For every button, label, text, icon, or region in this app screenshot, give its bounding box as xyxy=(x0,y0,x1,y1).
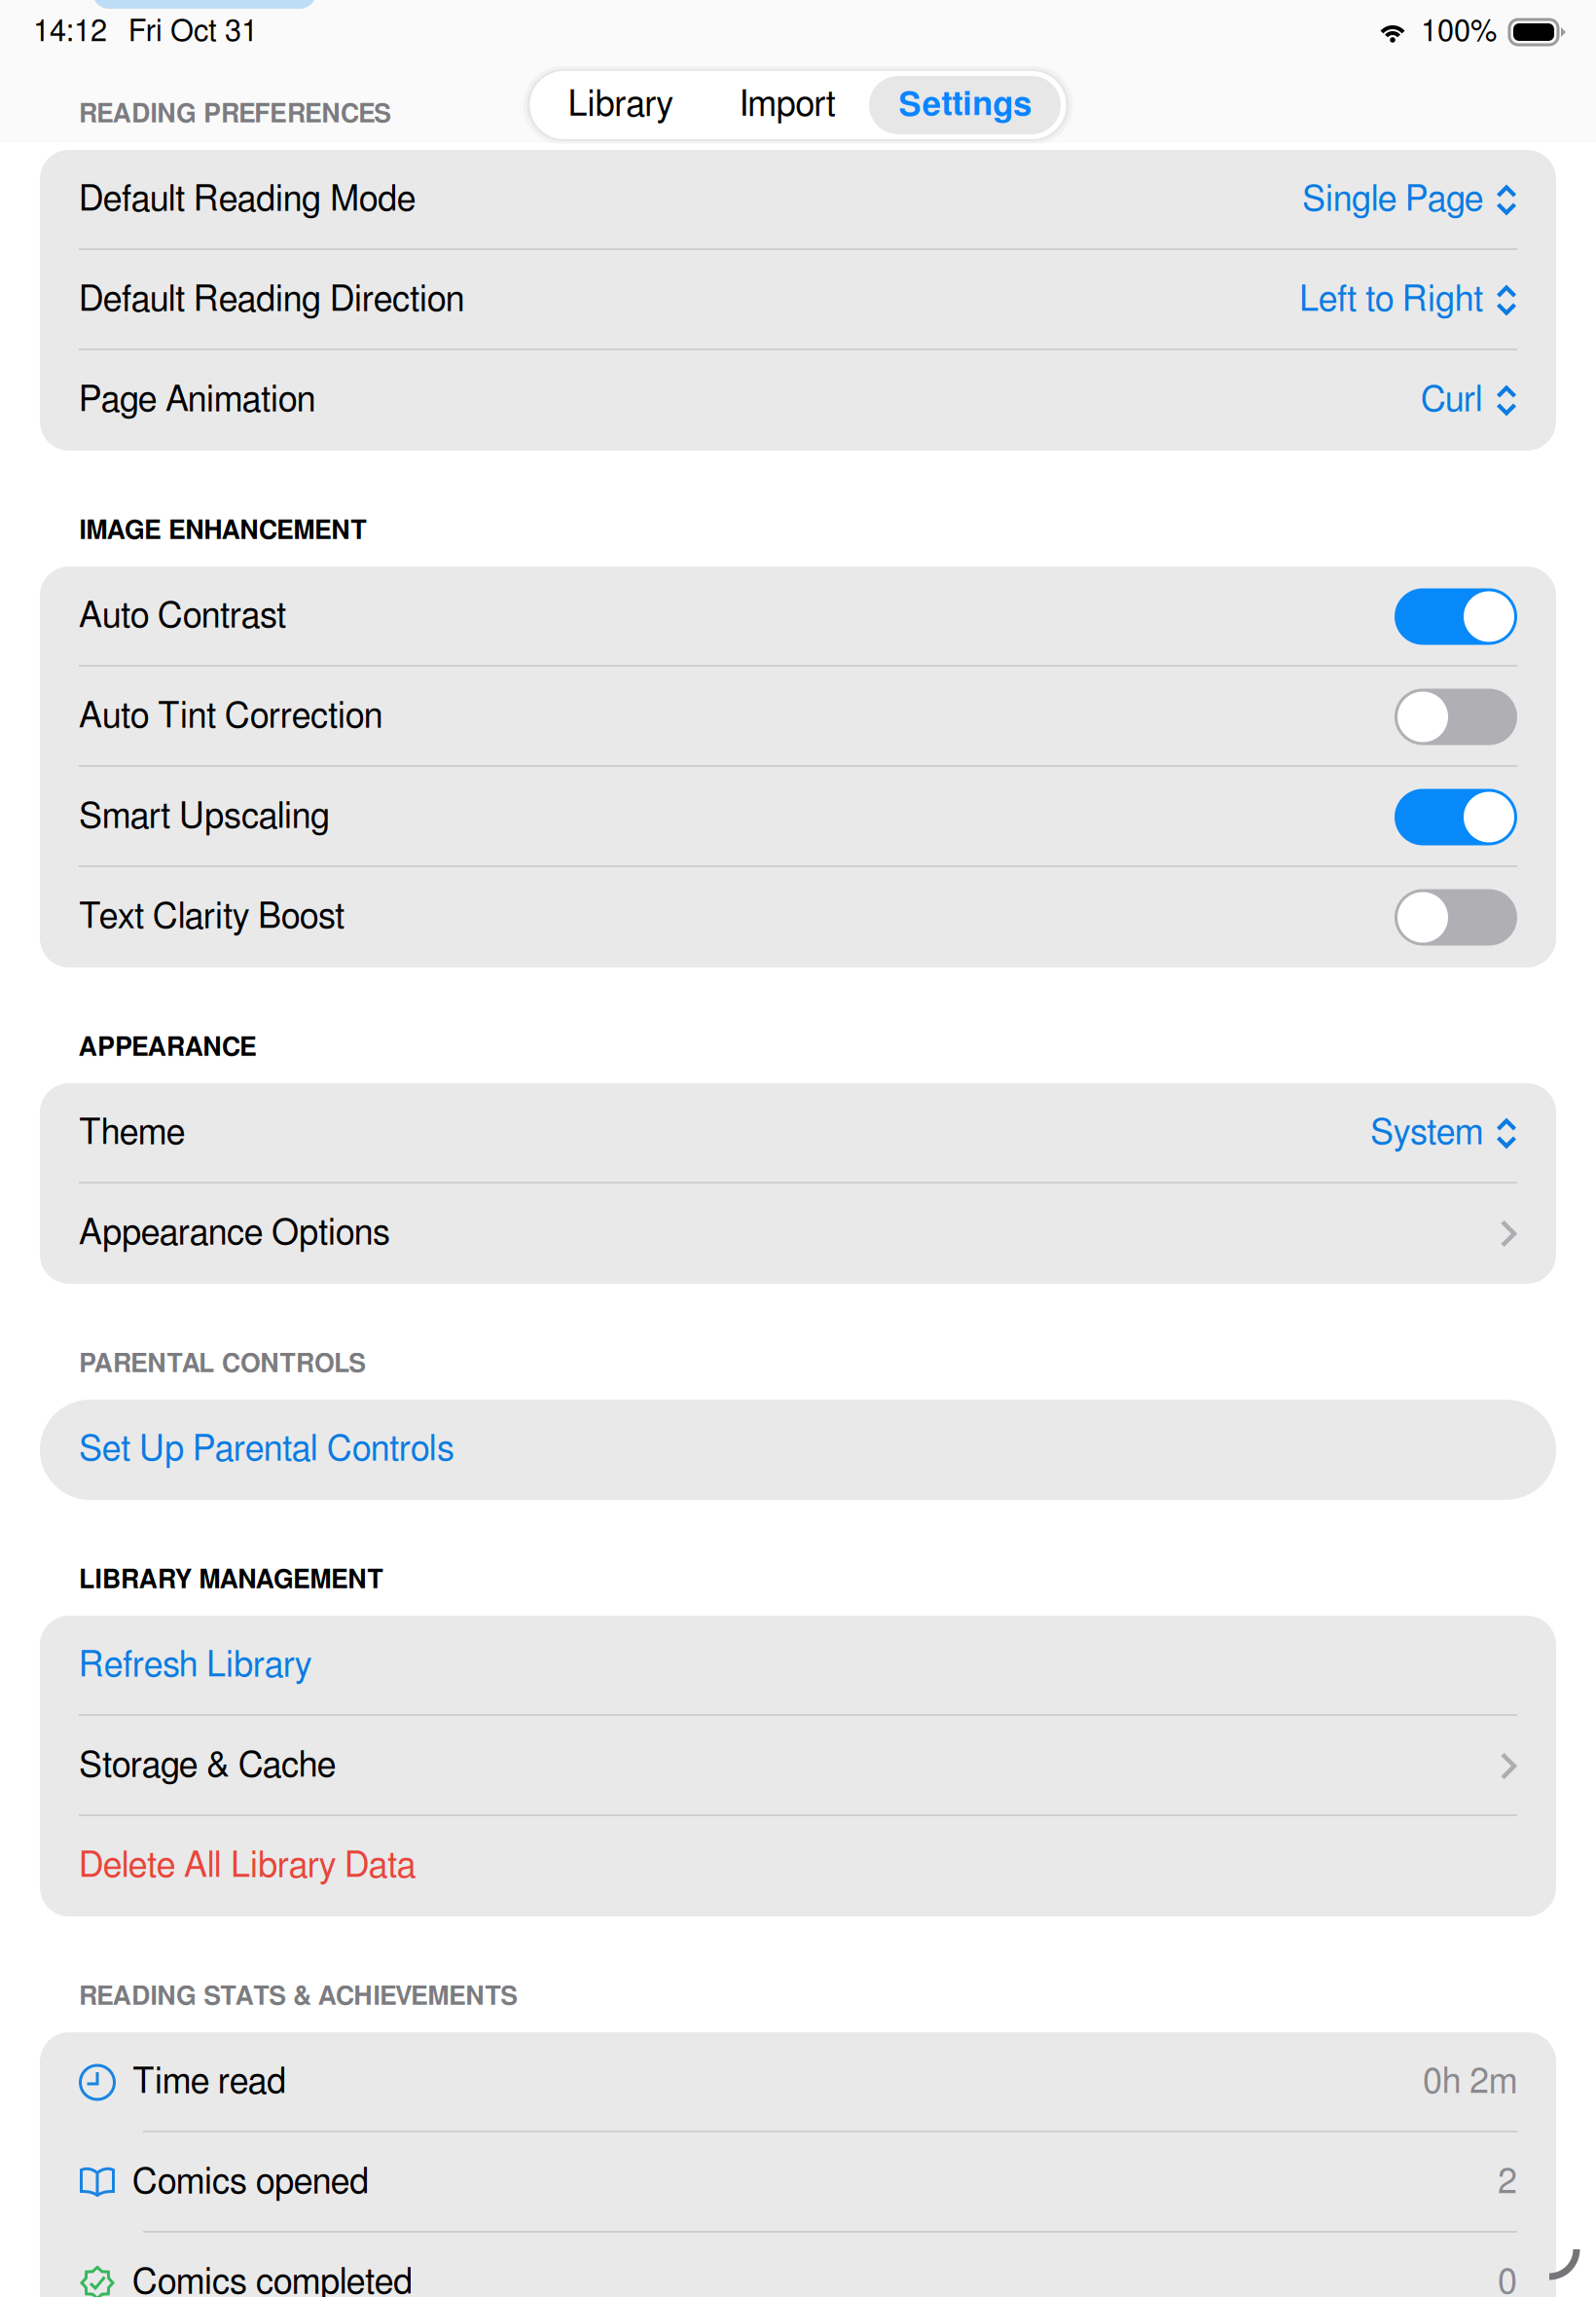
staticText: Fri Oct 31 xyxy=(128,17,258,47)
staticText: 100% xyxy=(1421,17,1497,47)
staticText: Smart Upscaling xyxy=(79,800,330,835)
staticText: Curl xyxy=(1421,383,1483,418)
button[interactable]: Smart Upscaling xyxy=(40,767,1556,867)
staticText: READING STATS & ACHIEVEMENTS xyxy=(79,1984,518,2010)
staticText: Refresh Library xyxy=(79,1648,311,1683)
button[interactable]: Appearance Options xyxy=(40,1184,1556,1284)
button[interactable]: Page Animation xyxy=(40,350,1556,451)
button[interactable]: Auto Contrast xyxy=(40,566,1556,667)
button[interactable]: Storage & Cache xyxy=(40,1716,1556,1816)
staticText: 2 xyxy=(1498,2165,1517,2200)
staticText: Single Page xyxy=(1302,182,1483,218)
button[interactable]: Settings xyxy=(869,76,1061,134)
staticText: Left to Right xyxy=(1299,283,1483,318)
staticText: Appearance Options xyxy=(79,1216,390,1251)
button[interactable]: Text Clarity Boost xyxy=(40,867,1556,967)
button[interactable]: Theme xyxy=(40,1083,1556,1184)
staticText: Settings xyxy=(898,88,1032,122)
staticText: Page Animation xyxy=(79,383,315,418)
staticText: Theme xyxy=(79,1116,185,1151)
staticText: 0 xyxy=(1498,2265,1517,2297)
staticText: READING PREFERENCES xyxy=(79,102,391,128)
button[interactable]: Default Reading Mode xyxy=(40,150,1556,250)
staticText: Default Reading Mode xyxy=(79,182,416,218)
staticText: Time read xyxy=(132,2065,286,2100)
button[interactable]: Set Up Parental Controls xyxy=(40,1400,1556,1500)
button[interactable]: Import xyxy=(706,76,869,134)
button[interactable]: Auto Tint Correction xyxy=(40,667,1556,767)
staticText: Storage & Cache xyxy=(79,1749,336,1784)
staticText: Import xyxy=(739,88,835,123)
staticText: Set Up Parental Controls xyxy=(79,1432,454,1467)
staticText: PARENTAL CONTROLS xyxy=(79,1351,366,1377)
staticText: Auto Tint Correction xyxy=(79,699,382,734)
button[interactable]: Delete All Library Data xyxy=(40,1816,1556,1916)
staticText: 0h 2m xyxy=(1423,2065,1517,2100)
staticText: APPEARANCE xyxy=(79,1035,257,1061)
staticText: Comics completed xyxy=(132,2265,413,2297)
staticText: Default Reading Direction xyxy=(79,283,464,318)
button[interactable]: Default Reading Direction xyxy=(40,250,1556,350)
staticText: 14:12 xyxy=(33,17,107,47)
staticText: Library xyxy=(568,88,673,123)
staticText: System xyxy=(1370,1116,1483,1151)
button[interactable]: Refresh Library xyxy=(40,1616,1556,1716)
staticText: Auto Contrast xyxy=(79,599,286,634)
staticText: IMAGE ENHANCEMENT xyxy=(79,518,367,544)
staticText: Text Clarity Boost xyxy=(79,900,345,935)
staticText: Delete All Library Data xyxy=(79,1849,417,1884)
button[interactable]: Library xyxy=(535,76,706,134)
staticText: Comics opened xyxy=(132,2165,369,2200)
staticText: LIBRARY MANAGEMENT xyxy=(79,1567,383,1593)
